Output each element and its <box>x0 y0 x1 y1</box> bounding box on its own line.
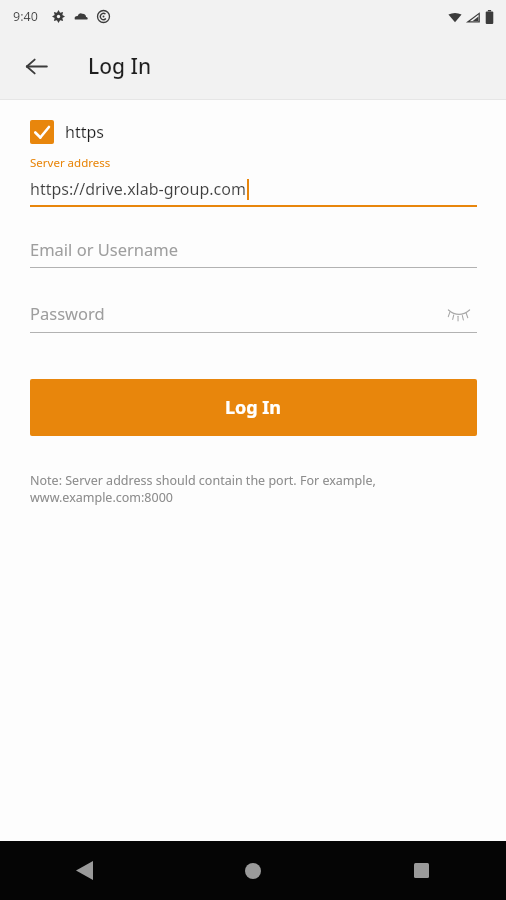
button[interactable]: Recent apps <box>337 841 506 900</box>
button[interactable]: https <box>30 120 104 144</box>
button[interactable]: Password <box>30 302 441 324</box>
button[interactable]: Back <box>0 841 168 900</box>
button[interactable]: Log In <box>30 379 477 436</box>
staticText: 9:40 <box>13 8 38 25</box>
button[interactable]: Back <box>12 42 60 90</box>
button[interactable]: Home <box>168 841 337 900</box>
staticText: https://drive.xlab-group.com <box>30 178 246 200</box>
staticText: Log In <box>225 395 282 420</box>
staticText: https <box>65 121 104 143</box>
staticText: Log In <box>88 52 152 81</box>
button[interactable]: Email or Username <box>30 238 477 268</box>
staticText: Note: Server address should contain the … <box>30 472 446 506</box>
staticText: Email or Username <box>30 238 179 260</box>
button[interactable]: Show password <box>441 295 477 331</box>
staticText: Server address <box>30 155 111 171</box>
